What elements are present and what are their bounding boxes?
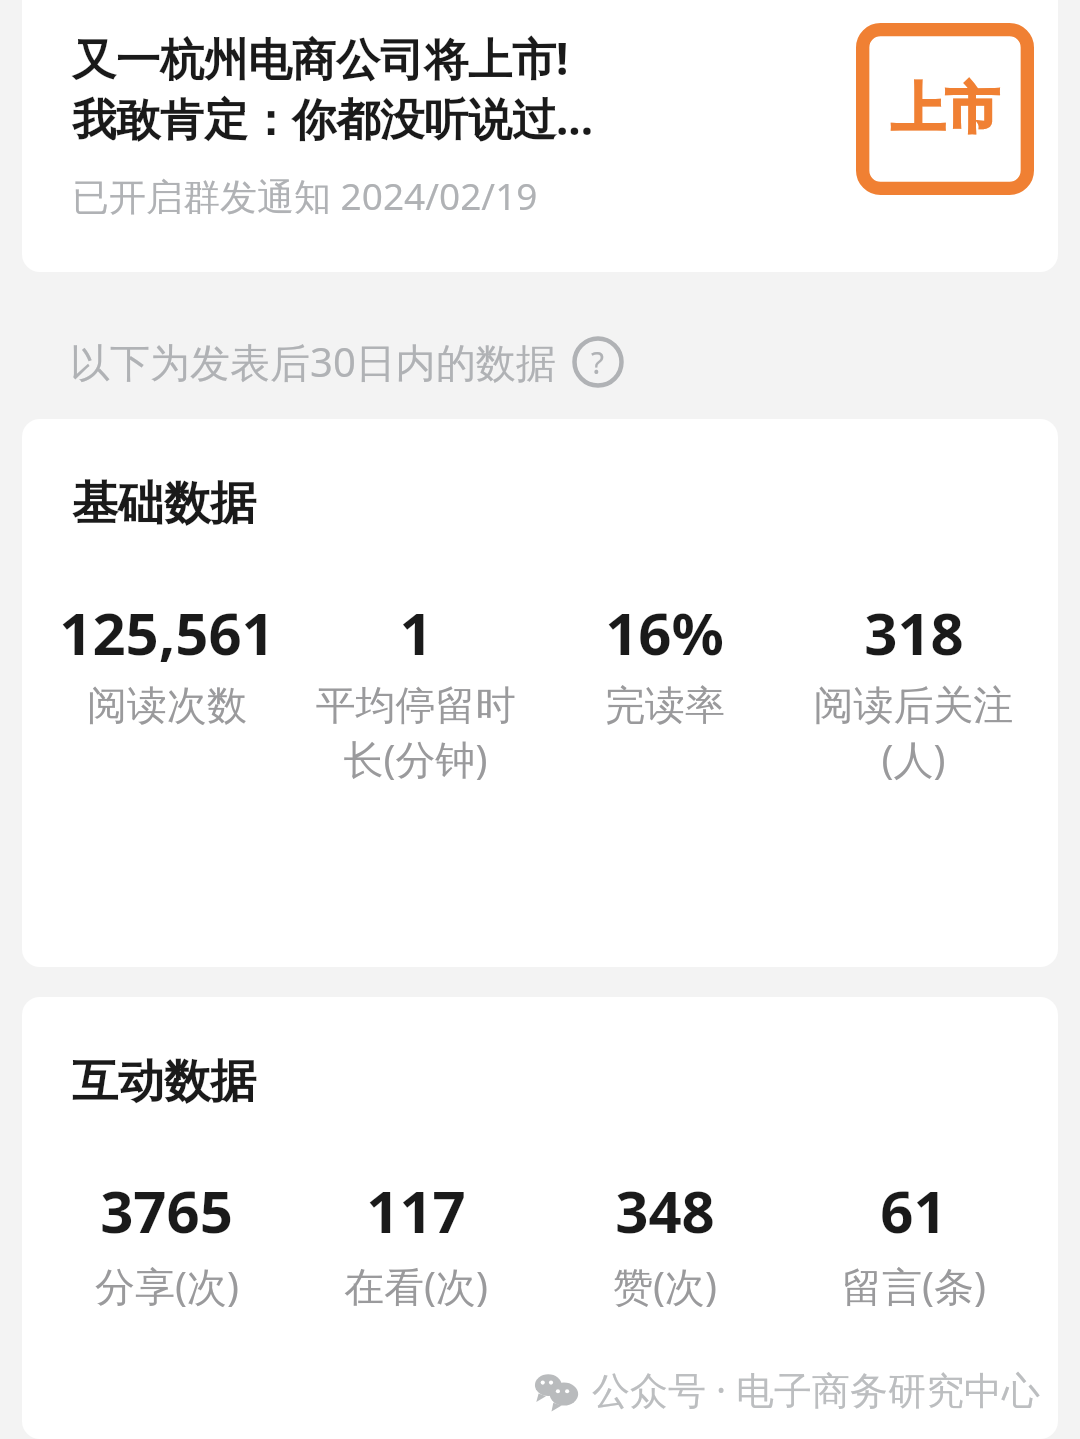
staticText: 我敢肯定：你都没听说过... [72,88,594,148]
button[interactable]: 125,561 [52,593,281,730]
staticText: 平均停留时长(分钟) [301,680,530,786]
staticText: 分享(次) [95,1258,239,1313]
button[interactable]: 互动数据 [22,997,1058,1439]
staticText: 又一杭州电商公司将上市! [72,28,569,88]
button[interactable]: 基础数据 [22,419,1058,967]
staticText: 完读率 [605,680,725,730]
staticText: 61 [880,1171,947,1250]
button[interactable]: 3765 [52,1171,281,1313]
staticText: 上市 [891,75,999,143]
button[interactable]: 318 [799,593,1028,786]
staticText: 互动数据 [72,1053,256,1111]
staticText: 1 [399,593,433,672]
staticText: 在看(次) [344,1258,488,1313]
button[interactable]: 16% [550,593,779,730]
staticText: 117 [366,1171,466,1250]
button[interactable]: 348 [550,1171,779,1313]
staticText: 基础数据 [72,475,256,533]
staticText: 318 [864,593,964,672]
other: 帮助说明 [572,336,624,388]
staticText: ? [591,342,605,383]
staticText: 赞(次) [613,1258,717,1313]
button[interactable]: 又一杭州电商公司将上市! [22,0,1058,272]
staticText: 3765 [100,1171,233,1250]
staticText: 留言(条) [842,1258,986,1313]
staticText: 125,561 [59,593,275,672]
button[interactable]: 117 [301,1171,530,1313]
staticText: 348 [615,1171,715,1250]
button[interactable]: 61 [799,1171,1028,1313]
staticText: 已开启群发通知 2024/02/19 [72,170,538,221]
staticText: 公众号 · 电子商务研究中心 [592,1363,1040,1415]
staticText: 阅读后关注(人) [799,680,1028,786]
staticText: 阅读次数 [87,680,247,730]
staticText: 16% [605,593,724,672]
button[interactable]: 以下为发表后30日内的数据 [70,334,624,389]
button[interactable]: 1 [301,593,530,786]
staticText: 以下为发表后30日内的数据 [70,334,556,389]
